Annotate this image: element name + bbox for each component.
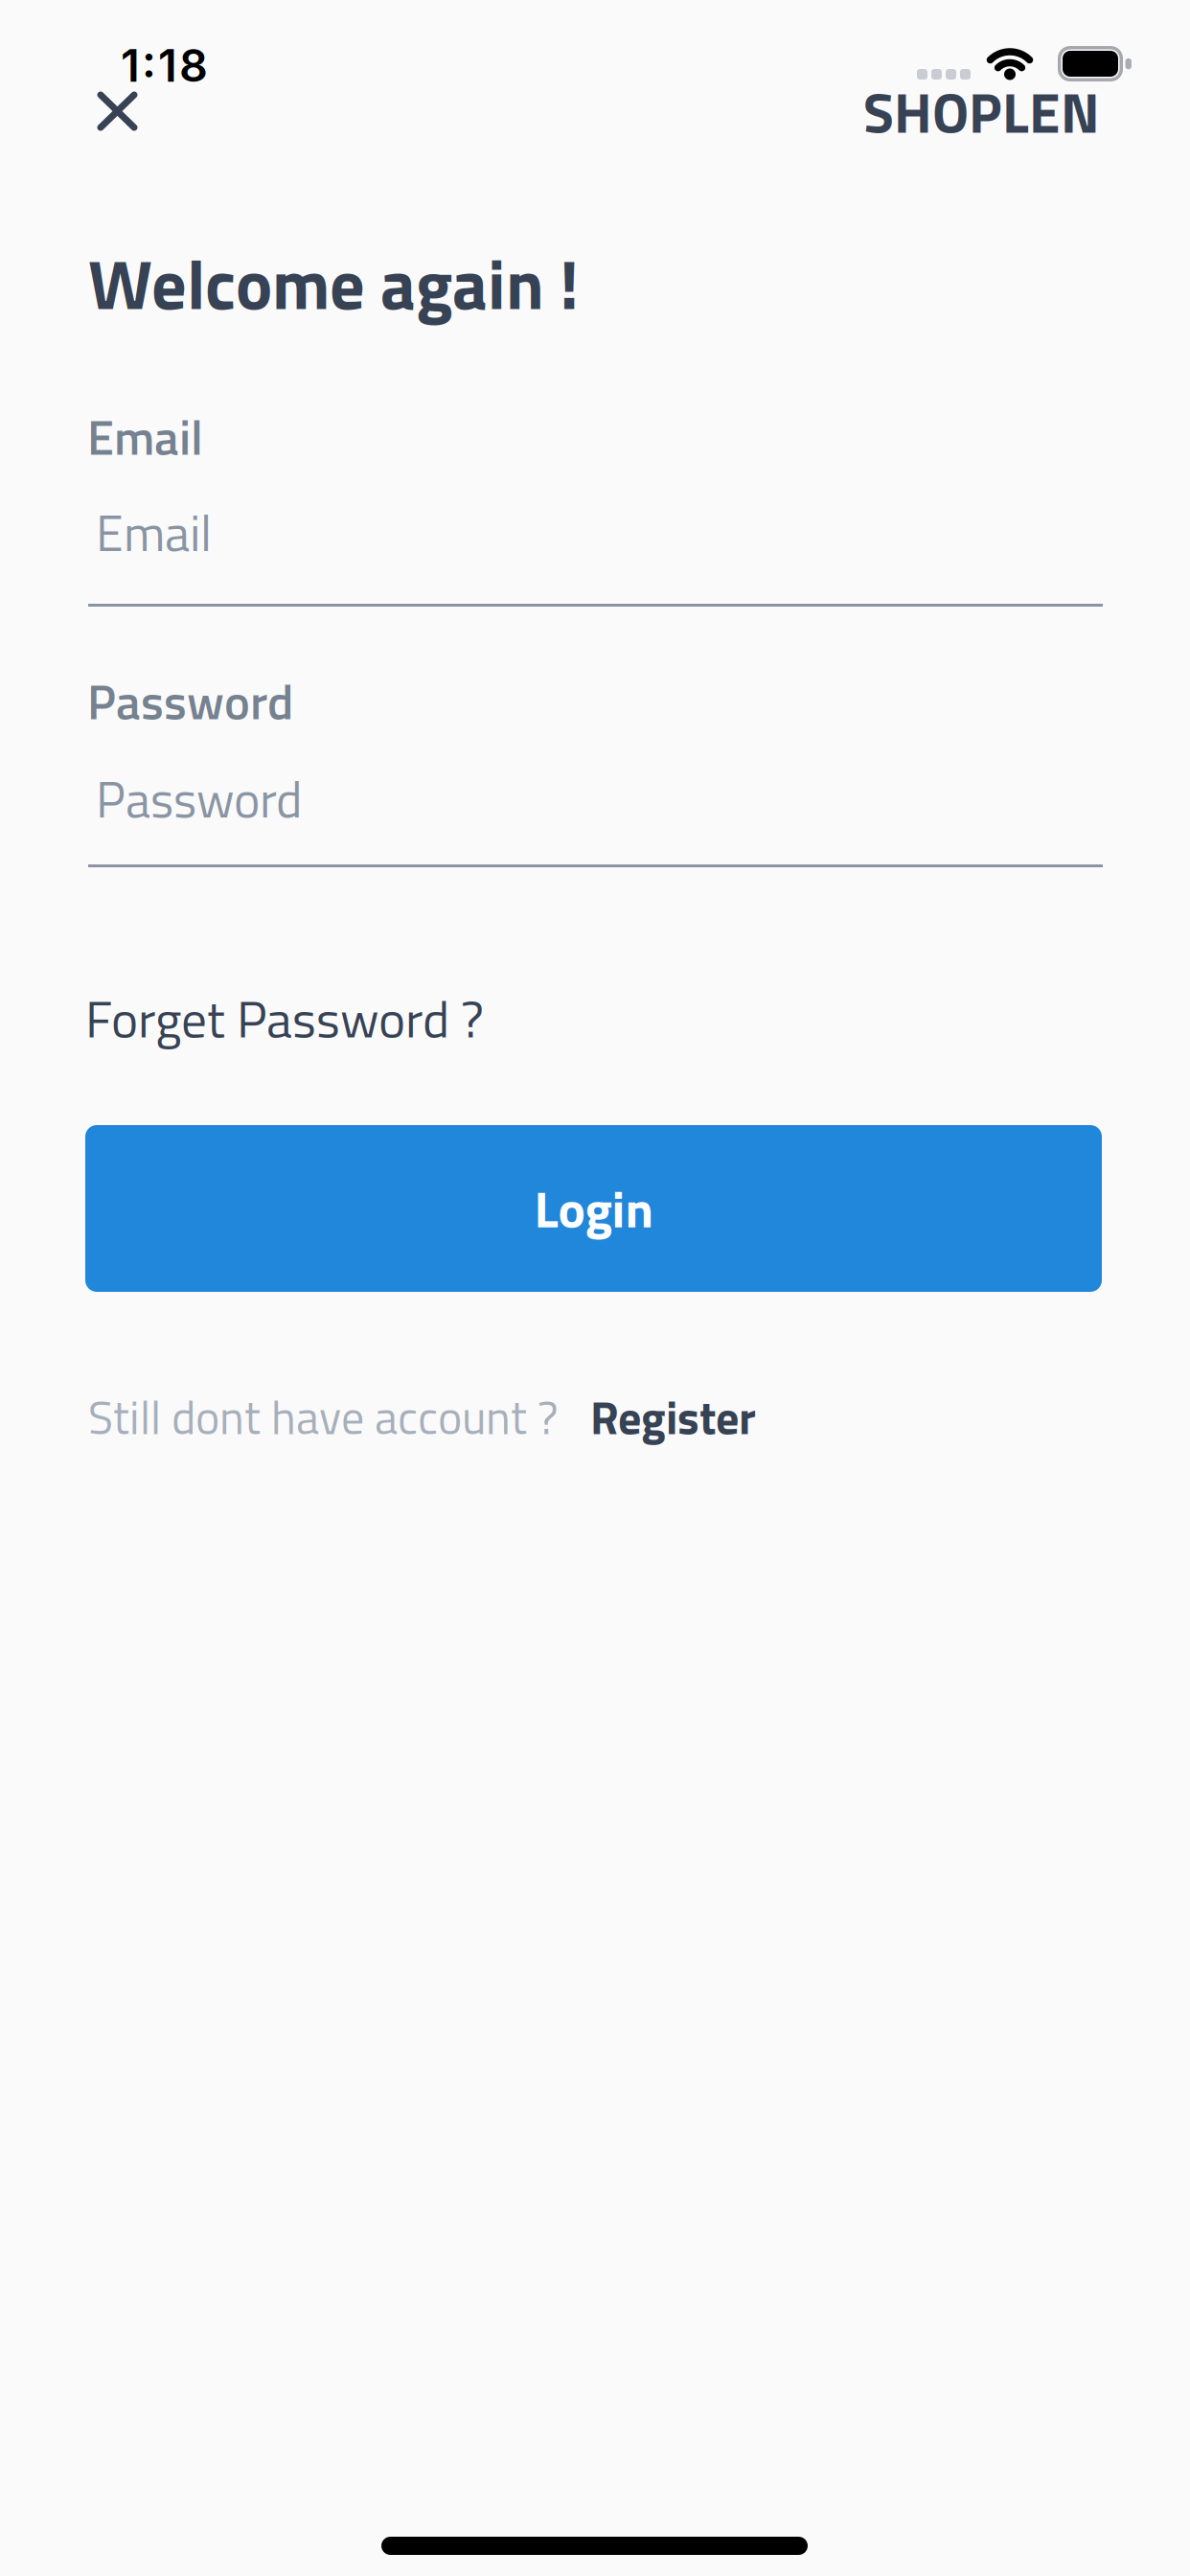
button[interactable]: Register [590, 1382, 756, 1452]
button[interactable]: Login [85, 1125, 1102, 1292]
staticText: Register [590, 1382, 756, 1452]
staticText: Still dont have account ? [88, 1382, 558, 1452]
staticText: SHOPLEN [863, 69, 1100, 154]
staticText: Email [96, 494, 212, 570]
staticText: Email [87, 400, 203, 474]
staticText: Welcome again ! [88, 231, 579, 336]
staticText: Password [96, 761, 303, 837]
staticText: Login [534, 1170, 653, 1247]
staticText: Password [87, 664, 293, 738]
button[interactable]: Forget Password ? [85, 979, 484, 1057]
button[interactable]: Close [79, 73, 155, 149]
staticText: Forget Password ? [85, 979, 484, 1057]
staticText: 1:18 [121, 38, 208, 92]
